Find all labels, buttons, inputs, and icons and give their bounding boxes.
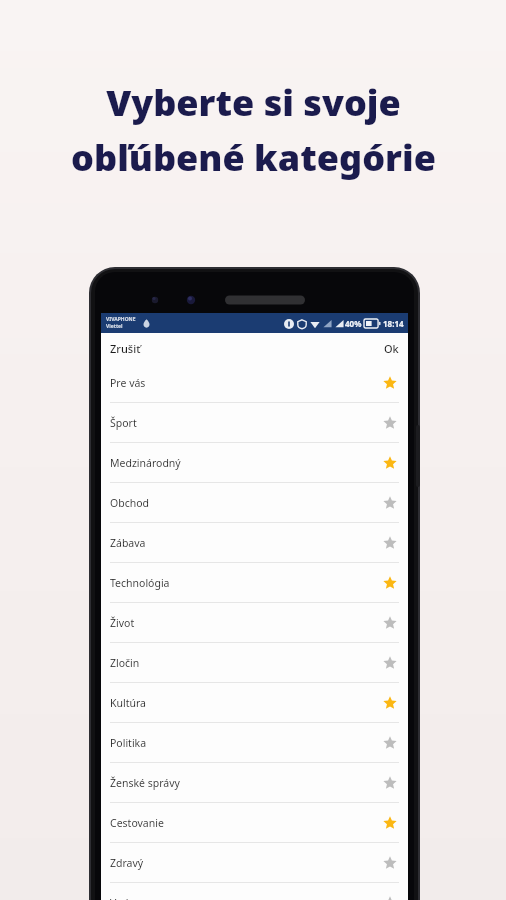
other: Add Zdravý to favourites <box>382 855 398 871</box>
other: Add Obchod to favourites <box>382 495 398 511</box>
staticText: Život <box>110 616 382 630</box>
staticText: Zločin <box>110 656 382 670</box>
other: Add Zábava to favourites <box>382 535 398 551</box>
staticText: 40% <box>345 318 362 329</box>
button[interactable]: Obchod <box>101 483 408 523</box>
other: Remove Technológia from favourites <box>382 575 398 591</box>
other: Add Šport to favourites <box>382 415 398 431</box>
button[interactable]: Technológia <box>101 563 408 603</box>
other: Add Ženské správy to favourites <box>382 775 398 791</box>
button[interactable]: Ženské správy <box>101 763 408 803</box>
staticText: 18:14 <box>383 318 404 329</box>
other: Remove Pre vás from favourites <box>382 375 398 391</box>
other: Add Zločin to favourites <box>382 655 398 671</box>
staticText: Zábava <box>110 536 382 550</box>
other: Add Veda to favourites <box>382 895 398 900</box>
button[interactable]: Pre vás <box>101 363 408 403</box>
staticText: Vyberte si svoje <box>106 78 401 127</box>
other: Remove Medzinárodný from favourites <box>382 455 398 471</box>
staticText: Šport <box>110 416 382 430</box>
staticText: Viettel <box>106 323 123 330</box>
staticText: Ženské správy <box>110 776 382 790</box>
button[interactable]: Zrušiť <box>101 337 149 360</box>
staticText: Politika <box>110 736 382 750</box>
staticText: Zrušiť <box>110 341 141 356</box>
staticText: Zdravý <box>110 856 382 870</box>
staticText: VIVAPHONE <box>106 316 136 323</box>
button[interactable]: Zábava <box>101 523 408 563</box>
staticText: Veda <box>110 896 382 900</box>
button[interactable]: Zločin <box>101 643 408 683</box>
other: Add Život to favourites <box>382 615 398 631</box>
other: Remove Cestovanie from favourites <box>382 815 398 831</box>
button[interactable]: Život <box>101 603 408 643</box>
staticText: Pre vás <box>110 376 382 390</box>
staticText: Ok <box>384 341 399 356</box>
other: Remove Kultúra from favourites <box>382 695 398 711</box>
button[interactable]: Politika <box>101 723 408 763</box>
button[interactable]: Veda <box>101 883 408 900</box>
button[interactable]: Ok <box>376 337 408 360</box>
other: Add Politika to favourites <box>382 735 398 751</box>
staticText: Medzinárodný <box>110 456 382 470</box>
staticText: Kultúra <box>110 696 382 710</box>
staticText: Cestovanie <box>110 816 382 830</box>
staticText: Obchod <box>110 496 382 510</box>
button[interactable]: Kultúra <box>101 683 408 723</box>
staticText: obľúbené kategórie <box>71 133 436 182</box>
button[interactable]: Cestovanie <box>101 803 408 843</box>
button[interactable]: Medzinárodný <box>101 443 408 483</box>
button[interactable]: Zdravý <box>101 843 408 883</box>
staticText: Technológia <box>110 576 382 590</box>
button[interactable]: Šport <box>101 403 408 443</box>
